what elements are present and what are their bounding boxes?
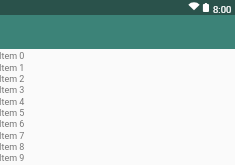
staticText: Item 9: [0, 153, 25, 164]
staticText: Item 3: [0, 85, 25, 96]
staticText: Item 6: [0, 119, 25, 130]
button[interactable]: Item 3: [0, 85, 235, 96]
button[interactable]: Item 7: [0, 130, 235, 142]
other: Battery: [188, 0, 213, 15]
staticText: Item 8: [0, 142, 25, 153]
staticText: Item 1: [0, 63, 25, 74]
button[interactable]: Item 8: [0, 142, 235, 153]
staticText: Item 5: [0, 108, 25, 119]
staticText: Item 4: [0, 97, 25, 108]
button[interactable]: Item 2: [0, 74, 235, 85]
button[interactable]: Item 6: [0, 119, 235, 130]
staticText: 8:00: [213, 4, 232, 15]
other: Wi-Fi signal: [188, 0, 213, 15]
button[interactable]: Item 5: [0, 108, 235, 119]
button[interactable]: Item 9: [0, 153, 235, 164]
staticText: Item 7: [0, 131, 25, 142]
button[interactable]: Item 0: [0, 51, 235, 62]
button[interactable]: Item 1: [0, 62, 235, 74]
staticText: Item 2: [0, 74, 25, 85]
staticText: Item 0: [0, 51, 25, 62]
button[interactable]: Item 4: [0, 96, 235, 108]
